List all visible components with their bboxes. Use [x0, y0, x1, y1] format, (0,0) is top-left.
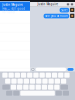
staticText: Sure!	[61, 8, 68, 12]
button[interactable]: Add media	[31, 68, 34, 71]
staticText: Messages	[8, 2, 21, 6]
staticText: Justin Maguire	[38, 2, 59, 6]
button[interactable]: Send	[67, 68, 74, 71]
button[interactable]: Compose	[70, 2, 74, 7]
button[interactable]: Details	[66, 2, 70, 7]
staticText: See you at noon	[45, 14, 68, 18]
staticText: Hey — still good for lunch	[2, 7, 25, 14]
button[interactable]: Justin Maguire	[0, 5, 30, 14]
button[interactable]	[0, 68, 30, 77]
button[interactable]: Edit	[0, 2, 5, 7]
staticText: Justin Maguire	[2, 3, 23, 6]
